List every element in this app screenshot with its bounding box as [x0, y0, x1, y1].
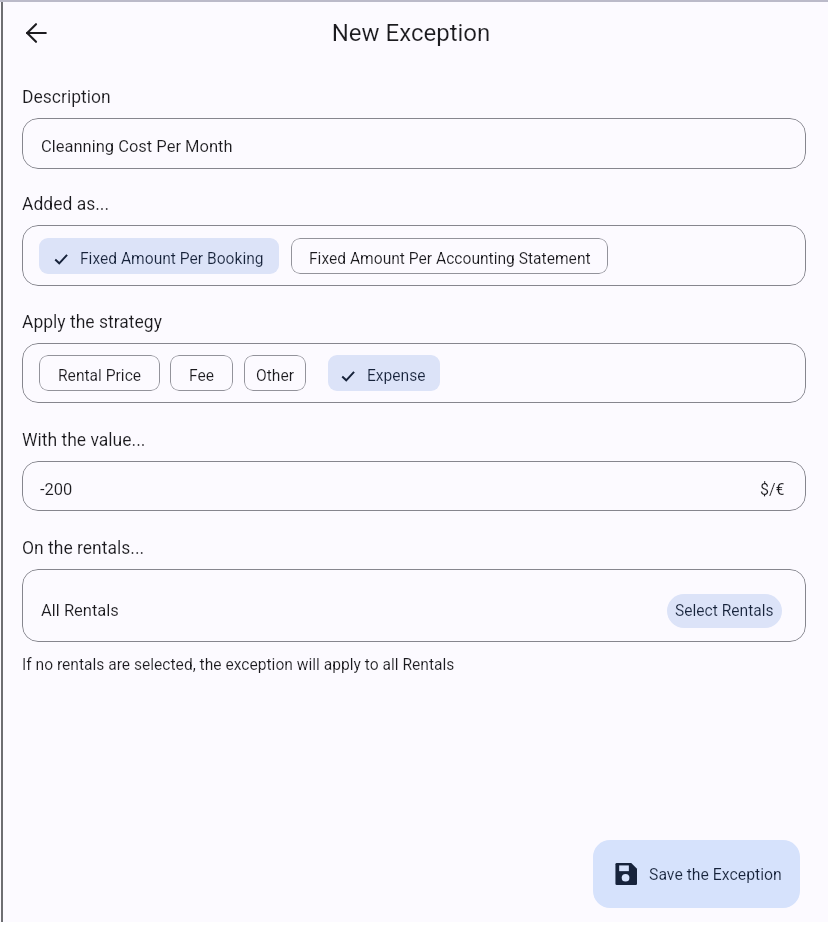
staticText: Other [256, 367, 294, 385]
staticText: Save the Exception [649, 865, 782, 884]
staticText: All Rentals [41, 601, 119, 620]
button[interactable]: Expense [328, 355, 440, 391]
button[interactable]: Fixed Amount Per Booking [22, 225, 806, 286]
staticText: Expense [367, 367, 426, 385]
staticText: On the rentals... [22, 538, 145, 559]
staticText: Description [22, 87, 111, 108]
staticText: Apply the strategy [22, 312, 162, 333]
button[interactable]: Fixed Amount Per Booking [39, 238, 279, 274]
button[interactable]: Rental Price [22, 343, 806, 403]
button[interactable]: Select Rentals [667, 594, 782, 628]
button[interactable]: Other [244, 355, 306, 391]
button[interactable]: -200 [22, 461, 806, 511]
staticText: If no rentals are selected, the exceptio… [22, 656, 455, 674]
button[interactable]: Rental Price [39, 355, 160, 391]
staticText: New Exception [0, 19, 825, 47]
staticText: Fee [189, 367, 214, 385]
button[interactable]: Fixed Amount Per Accounting Statement [291, 238, 608, 274]
staticText: Cleanning Cost Per Month [41, 137, 233, 156]
button[interactable]: Save the Exception [593, 840, 800, 908]
staticText: Rental Price [58, 367, 142, 385]
staticText: Added as... [22, 194, 110, 215]
staticText: Fixed Amount Per Booking [80, 250, 264, 268]
staticText: With the value... [22, 430, 146, 451]
staticText: $/€ [760, 480, 785, 499]
button[interactable]: Cleanning Cost Per Month [22, 118, 806, 169]
staticText: -200 [40, 480, 73, 499]
button[interactable]: Back [12, 11, 56, 55]
button[interactable]: All Rentals [22, 569, 806, 642]
button[interactable]: Fee [170, 355, 233, 391]
staticText: Fixed Amount Per Accounting Statement [309, 250, 591, 268]
staticText: Select Rentals [675, 602, 774, 620]
